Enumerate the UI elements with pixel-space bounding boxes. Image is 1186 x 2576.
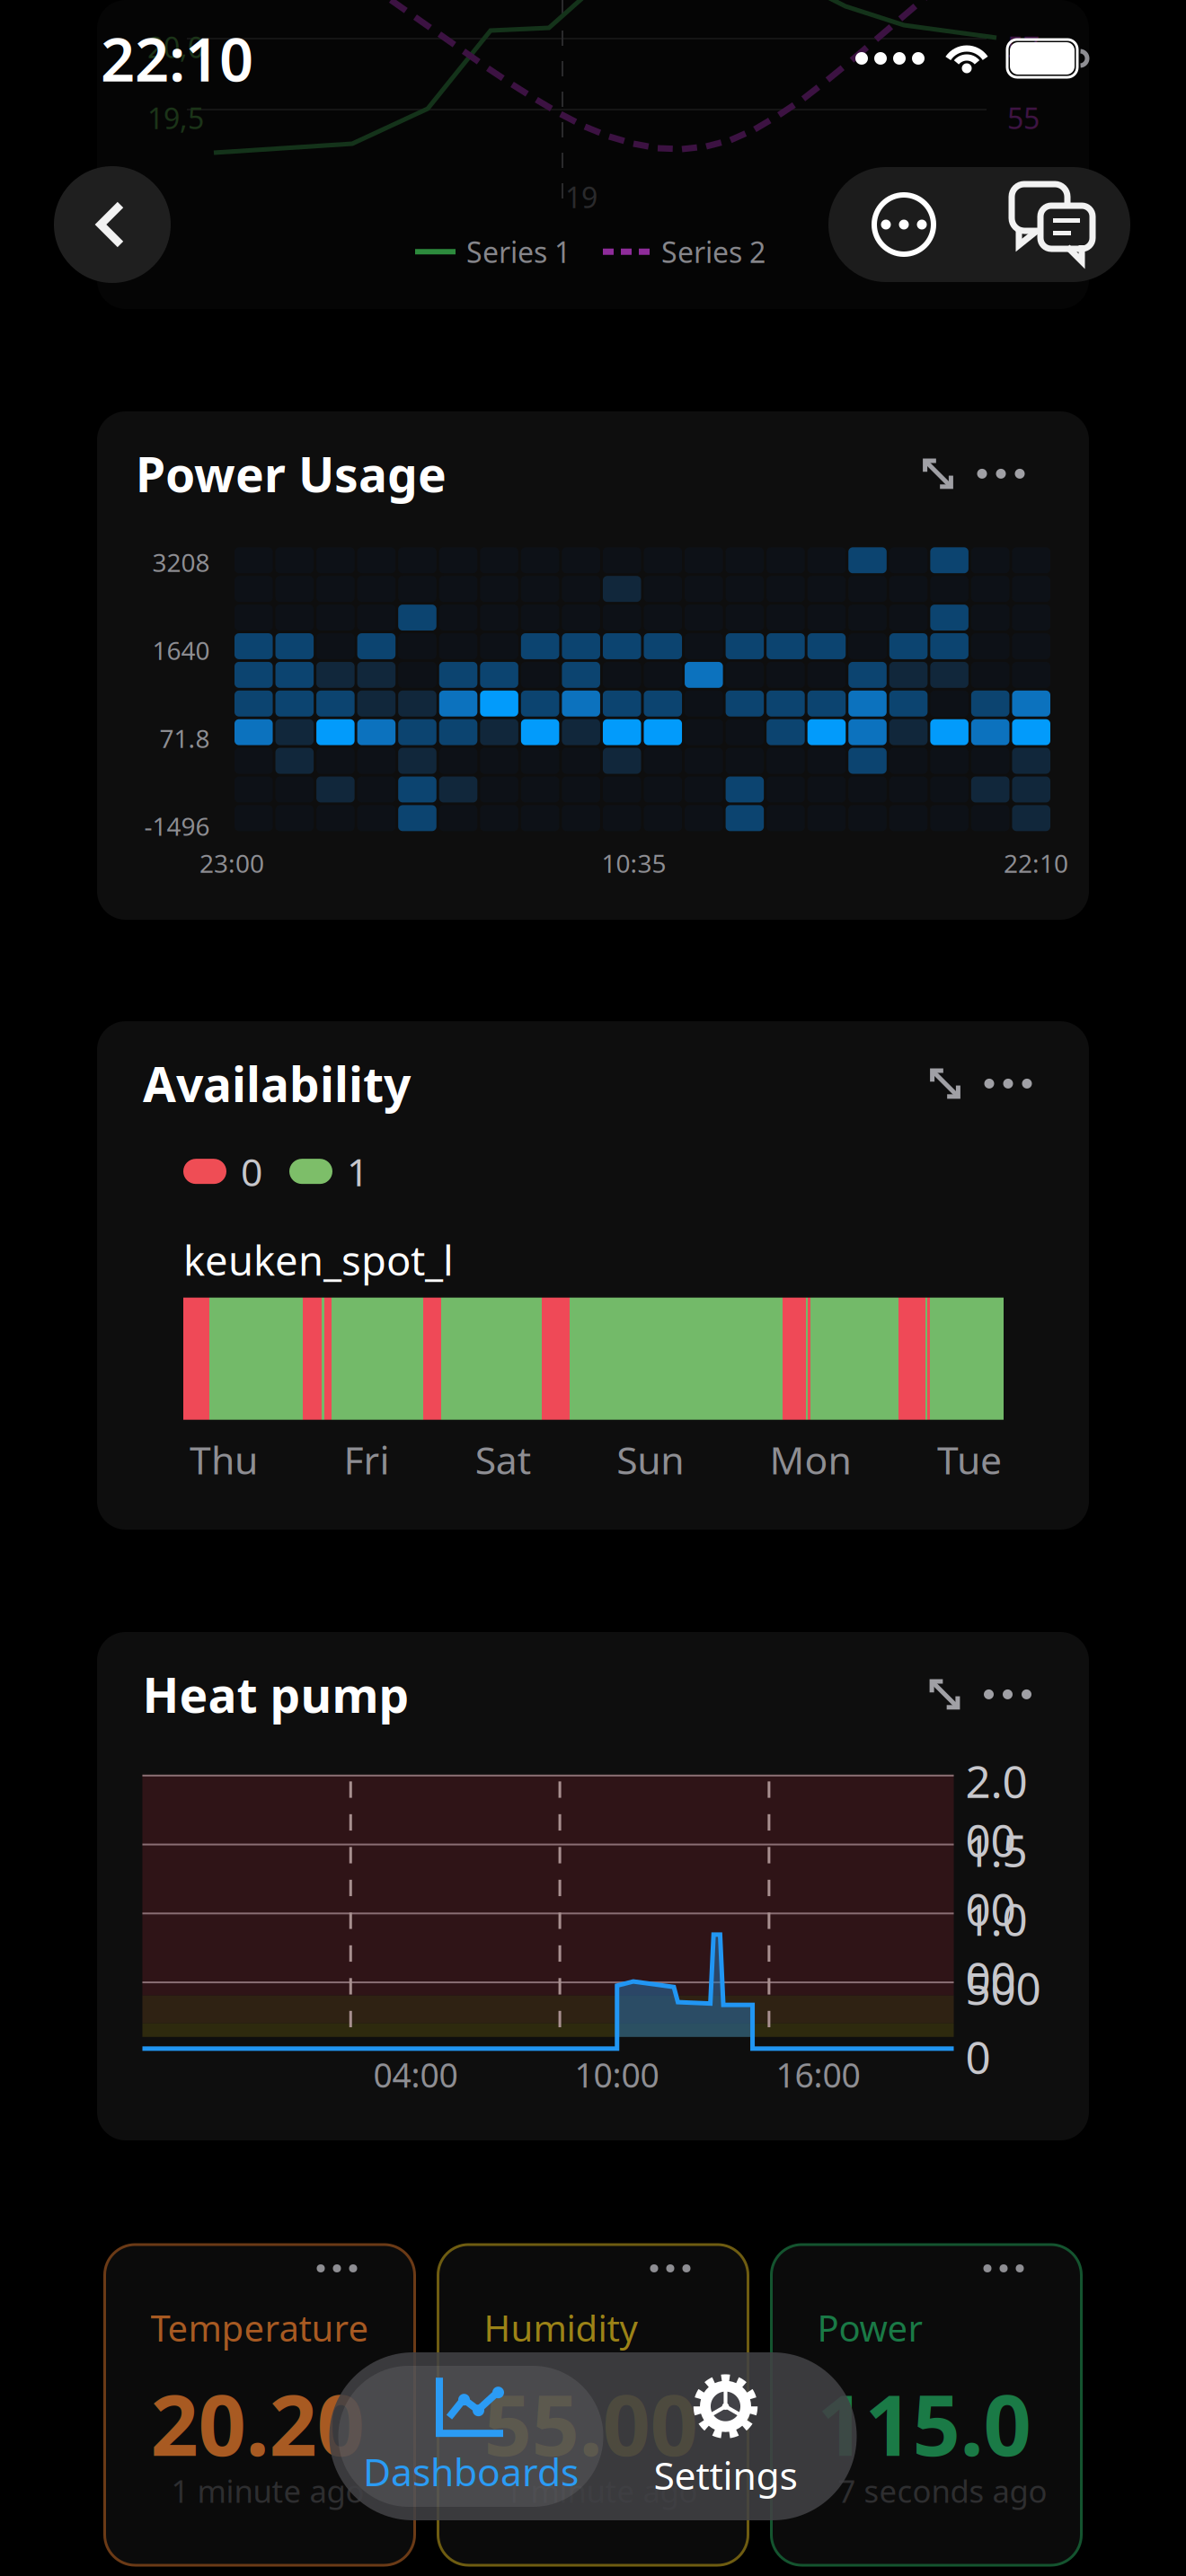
- staticText: 55.00: [484, 2368, 698, 2479]
- button[interactable]: Power: [771, 2245, 1081, 2565]
- button[interactable]: Temperature: [105, 2245, 415, 2565]
- staticText: 57: [1007, 28, 1040, 66]
- staticText: 0: [241, 1146, 262, 1197]
- staticText: 22:10: [1004, 846, 1068, 880]
- staticText: 16:00: [776, 2052, 860, 2097]
- button[interactable]: Expand Availability: [917, 1056, 973, 1111]
- staticText: Dashboards: [363, 2446, 579, 2497]
- button[interactable]: More options for Power Usage: [966, 446, 1036, 502]
- staticText: Thu: [190, 1434, 258, 1485]
- staticText: 0: [965, 2027, 991, 2086]
- button[interactable]: More options for Heat pump: [973, 1666, 1043, 1722]
- staticText: 1.000: [965, 1889, 1027, 2007]
- staticText: 10:35: [602, 846, 666, 880]
- staticText: 23:00: [199, 846, 264, 880]
- staticText: 3208: [152, 545, 210, 579]
- staticText: Power Usage: [136, 442, 447, 505]
- staticText: 7 seconds ago: [838, 2470, 1047, 2511]
- staticText: 115.0: [817, 2368, 1031, 2479]
- button[interactable]: Settings: [603, 2366, 848, 2507]
- staticText: Tue: [937, 1434, 1002, 1485]
- staticText: keuken_spot_l: [183, 1233, 454, 1287]
- staticText: 04:00: [373, 2052, 458, 2097]
- button[interactable]: Expand Heat pump: [917, 1666, 973, 1722]
- button[interactable]: More: [828, 167, 979, 282]
- staticText: Settings: [654, 2450, 797, 2500]
- button[interactable]: Humidity: [438, 2245, 748, 2565]
- staticText: Heat pump: [142, 1663, 409, 1726]
- staticText: 2.000: [965, 1751, 1027, 1869]
- staticText: 1: [347, 1146, 368, 1197]
- staticText: Power: [817, 2304, 923, 2352]
- staticText: 1 minute ago: [504, 2470, 698, 2511]
- staticText: 1 minute ago: [171, 2470, 364, 2511]
- staticText: Temperature: [150, 2304, 369, 2352]
- staticText: 1640: [152, 633, 210, 667]
- staticText: 19,5: [147, 99, 204, 137]
- staticText: 19: [565, 178, 597, 216]
- staticText: Series 2: [661, 233, 766, 271]
- staticText: Series 1: [466, 233, 571, 271]
- staticText: 22:10: [101, 19, 253, 98]
- button[interactable]: More options for Availability: [973, 1056, 1043, 1111]
- staticText: Humidity: [484, 2304, 637, 2352]
- staticText: Sat: [475, 1434, 531, 1485]
- staticText: -1496: [144, 809, 210, 843]
- staticText: Fri: [344, 1434, 389, 1485]
- button[interactable]: Expand Power Usage: [910, 446, 966, 502]
- staticText: Sun: [617, 1434, 684, 1485]
- staticText: 10:00: [575, 2052, 659, 2097]
- staticText: 55: [1007, 99, 1040, 137]
- staticText: Availability: [143, 1052, 411, 1115]
- staticText: 20,0: [147, 28, 204, 66]
- staticText: 20.20: [150, 2368, 364, 2479]
- staticText: 71.8: [159, 721, 210, 755]
- staticText: Mon: [770, 1434, 851, 1485]
- button[interactable]: Comments: [979, 167, 1130, 282]
- button[interactable]: Dashboards: [338, 2366, 603, 2507]
- staticText: 500: [965, 1958, 1041, 2017]
- staticText: 1.500: [965, 1820, 1027, 1938]
- button[interactable]: Back: [54, 166, 171, 283]
